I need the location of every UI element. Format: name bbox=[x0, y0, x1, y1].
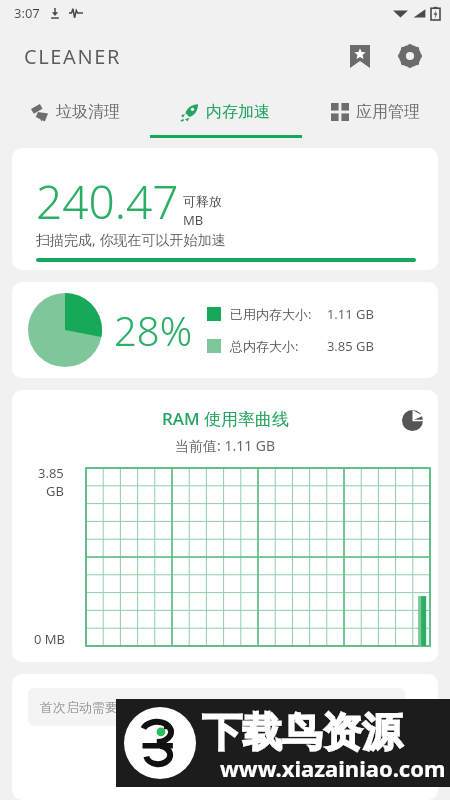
button[interactable]: 垃圾清理 bbox=[0, 86, 150, 138]
staticText: 1.11 GB bbox=[316, 305, 374, 323]
staticText: 28% bbox=[114, 303, 193, 357]
button[interactable]: 首次启动需要一些时间来收集数据 bbox=[12, 674, 438, 800]
staticText: 可释放 bbox=[183, 193, 222, 209]
button[interactable]: Settings bbox=[388, 34, 432, 78]
button[interactable]: RAM 使用率曲线 bbox=[12, 390, 438, 662]
button[interactable]: Bookmark bbox=[338, 34, 382, 78]
staticText: RAM 使用率曲线 bbox=[162, 407, 289, 430]
staticText: CLEANER bbox=[24, 43, 121, 70]
button[interactable]: Chart options bbox=[392, 400, 432, 440]
staticText: 已用内存大小: bbox=[230, 305, 312, 323]
staticText: 扫描完成, 你现在可以开始加速 bbox=[36, 230, 226, 249]
button[interactable]: 应用管理 bbox=[300, 86, 450, 138]
staticText: 3.85 bbox=[38, 464, 64, 482]
staticText: 3.85 GB bbox=[316, 337, 374, 355]
staticText: 0 MB bbox=[34, 630, 66, 648]
staticText: 总内存大小: bbox=[230, 337, 299, 355]
staticText: GB bbox=[46, 482, 64, 500]
button[interactable]: 内存加速 bbox=[150, 86, 300, 138]
staticText: RAM 历史使用曲线 bbox=[153, 738, 297, 761]
button[interactable]: History chart options bbox=[392, 730, 432, 770]
staticText: 3:07 bbox=[14, 4, 40, 22]
staticText: 240.47 bbox=[36, 170, 179, 233]
staticText: 当前值: 1.11 GB bbox=[175, 436, 276, 455]
staticText: 下载鸟资源 bbox=[202, 707, 402, 757]
staticText: 内存加速 bbox=[206, 102, 270, 122]
staticText: 应用管理 bbox=[356, 102, 420, 122]
staticText: 垃圾清理 bbox=[56, 102, 120, 122]
button[interactable]: 240.47 bbox=[12, 148, 438, 270]
staticText: 首次启动需要一些时间来收集数据 bbox=[40, 699, 235, 715]
button[interactable]: 28% bbox=[12, 282, 438, 378]
staticText: MB bbox=[183, 211, 204, 229]
staticText: www.xiazainiao.com bbox=[220, 753, 446, 783]
